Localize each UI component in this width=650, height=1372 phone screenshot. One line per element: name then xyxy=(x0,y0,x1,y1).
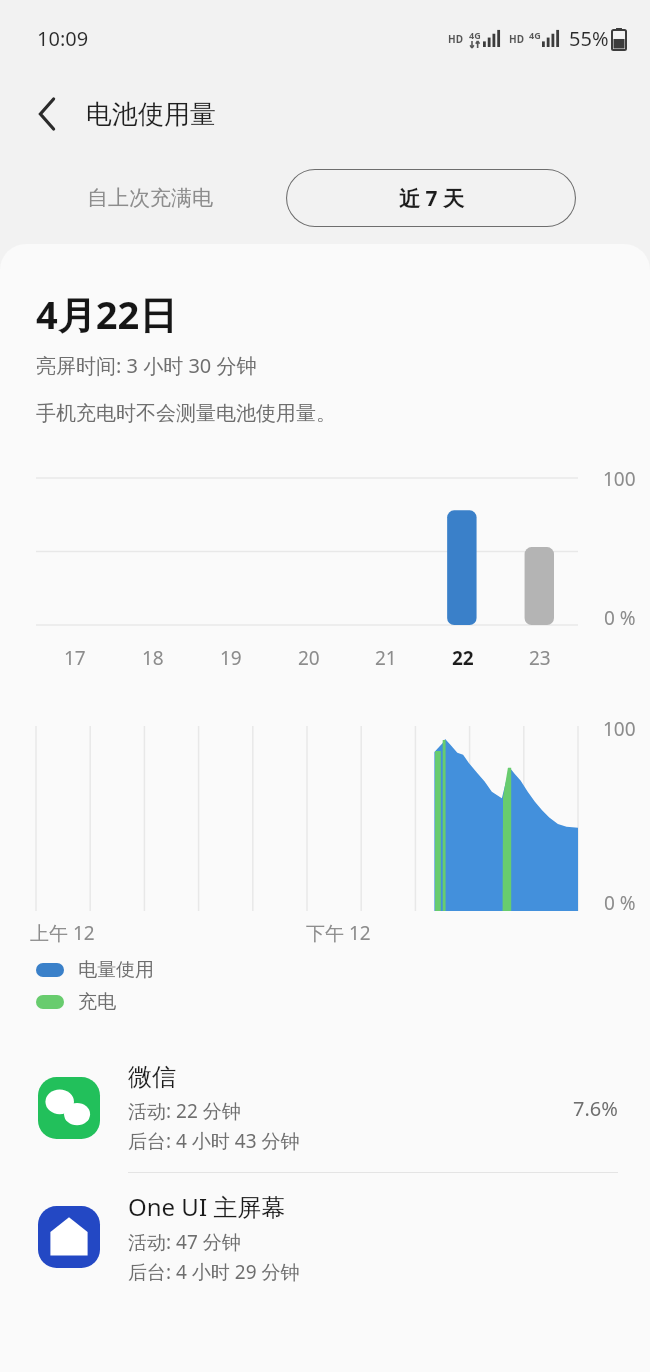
staticText: 0 % xyxy=(604,605,636,631)
staticText: 18 xyxy=(142,645,164,671)
staticText: 20 xyxy=(298,645,320,671)
staticText: 19 xyxy=(220,645,242,671)
staticText: 电量使用 xyxy=(78,958,154,982)
staticText: One UI 主屏幕 xyxy=(128,1190,286,1223)
button[interactable]: 近 7 天 xyxy=(286,169,576,227)
staticText: 0 % xyxy=(604,890,636,916)
staticText: 10:09 xyxy=(37,25,89,52)
staticText: 4G xyxy=(469,29,481,41)
staticText: 100 xyxy=(603,716,636,742)
staticText: 活动: 22 分钟 xyxy=(128,1098,241,1124)
staticText: 4月22日 xyxy=(36,288,178,340)
button[interactable]: 自上次充满电 xyxy=(20,169,280,227)
staticText: 21 xyxy=(375,645,397,671)
staticText: 100 xyxy=(603,466,636,492)
staticText: 23 xyxy=(529,645,551,671)
button[interactable]: 微信 xyxy=(0,1044,650,1172)
staticText: 55% xyxy=(569,25,609,52)
staticText: HD xyxy=(448,32,463,46)
staticText: 7.6% xyxy=(573,1095,618,1122)
button[interactable]: One UI 主屏幕 xyxy=(0,1173,650,1301)
staticText: 充电 xyxy=(78,990,116,1014)
button[interactable]: Back xyxy=(22,88,74,140)
staticText: 微信 xyxy=(128,1062,176,1092)
staticText: 22 xyxy=(452,645,474,671)
staticText: 手机充电时不会测量电池使用量。 xyxy=(36,401,336,426)
staticText: HD xyxy=(509,32,524,46)
staticText: 活动: 47 分钟 xyxy=(128,1229,241,1255)
staticText: 后台: 4 小时 29 分钟 xyxy=(128,1259,300,1285)
staticText: 下午 12 xyxy=(306,920,371,946)
staticText: 17 xyxy=(64,645,86,671)
staticText: 上午 12 xyxy=(30,920,95,946)
staticText: 近 7 天 xyxy=(399,184,464,213)
staticText: 自上次充满电 xyxy=(87,185,213,211)
staticText: 后台: 4 小时 43 分钟 xyxy=(128,1128,300,1154)
staticText: 4G xyxy=(529,29,541,41)
staticText: 亮屏时间: 3 小时 30 分钟 xyxy=(36,352,257,379)
staticText: 电池使用量 xyxy=(86,98,216,131)
